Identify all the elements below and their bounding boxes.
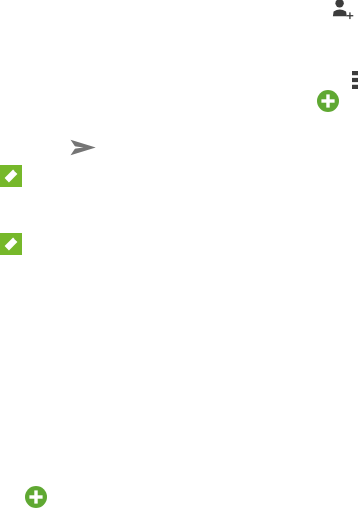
button[interactable]: Send xyxy=(66,133,100,161)
button[interactable]: Add new xyxy=(21,482,51,510)
button[interactable]: Edit xyxy=(0,165,22,187)
button[interactable]: Add contact xyxy=(330,0,354,21)
button[interactable]: More options xyxy=(348,65,364,95)
button[interactable]: Edit xyxy=(0,233,22,255)
button[interactable]: Add xyxy=(313,86,343,116)
